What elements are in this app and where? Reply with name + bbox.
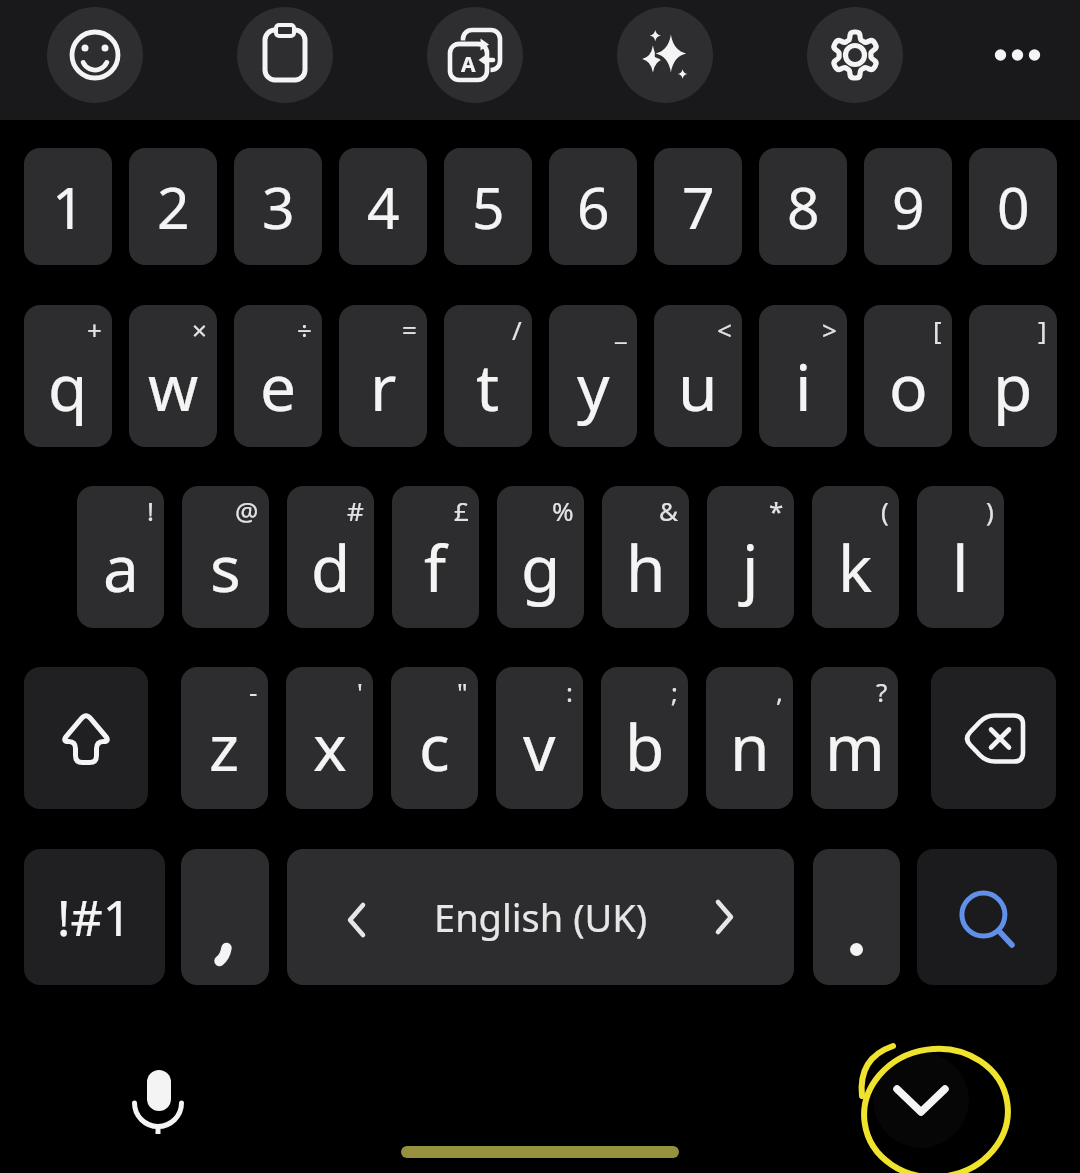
button[interactable]: w bbox=[129, 305, 217, 447]
button[interactable]: k bbox=[812, 486, 899, 628]
staticText: q bbox=[48, 343, 88, 430]
staticText: !#1 bbox=[57, 883, 132, 951]
button[interactable]: 1 bbox=[24, 148, 112, 265]
button[interactable]: !#1 bbox=[24, 849, 165, 985]
staticText: y bbox=[577, 343, 610, 430]
button[interactable] bbox=[617, 7, 713, 103]
staticText: ? bbox=[876, 674, 888, 709]
staticText: English (UK) bbox=[434, 891, 648, 943]
staticText: > bbox=[822, 312, 837, 347]
staticText: e bbox=[260, 343, 297, 430]
staticText: b bbox=[625, 703, 665, 790]
staticText: d bbox=[311, 524, 351, 611]
button[interactable]: e bbox=[234, 305, 322, 447]
staticText: 9 bbox=[892, 168, 925, 246]
staticText: 7 bbox=[682, 168, 715, 246]
button[interactable]: r bbox=[339, 305, 427, 447]
staticText: u bbox=[678, 343, 718, 430]
staticText: a bbox=[103, 524, 139, 611]
button[interactable] bbox=[24, 667, 148, 809]
button[interactable]: 2 bbox=[129, 148, 217, 265]
button[interactable]: z bbox=[181, 667, 268, 809]
button[interactable]: j bbox=[707, 486, 794, 628]
button[interactable] bbox=[813, 849, 900, 985]
staticText: r bbox=[370, 343, 397, 430]
staticText: s bbox=[210, 524, 241, 611]
staticText: v bbox=[523, 703, 556, 790]
staticText: A bbox=[461, 50, 476, 79]
staticText: / bbox=[512, 312, 522, 347]
staticText: 1 bbox=[52, 168, 85, 246]
button[interactable]: d bbox=[287, 486, 374, 628]
button[interactable]: 9 bbox=[864, 148, 952, 265]
button[interactable]: o bbox=[864, 305, 952, 447]
staticText: 5 bbox=[472, 168, 505, 246]
staticText: n bbox=[730, 703, 770, 790]
button[interactable] bbox=[873, 1052, 969, 1148]
button[interactable] bbox=[47, 7, 143, 103]
staticText: i bbox=[795, 343, 812, 430]
staticText: [ bbox=[933, 312, 942, 347]
staticText: g bbox=[521, 524, 561, 611]
staticText: 3 bbox=[262, 168, 295, 246]
button[interactable]: h bbox=[602, 486, 689, 628]
staticText: ! bbox=[147, 493, 154, 528]
staticText: = bbox=[402, 312, 417, 347]
staticText: t bbox=[476, 343, 500, 430]
button[interactable]: b bbox=[601, 667, 688, 809]
staticText: - bbox=[249, 674, 258, 709]
button[interactable]: u bbox=[654, 305, 742, 447]
staticText: f bbox=[424, 524, 447, 611]
button[interactable]: m bbox=[811, 667, 898, 809]
button[interactable]: y bbox=[549, 305, 637, 447]
button[interactable]: 5 bbox=[444, 148, 532, 265]
button[interactable] bbox=[237, 7, 333, 103]
button[interactable]: 4 bbox=[339, 148, 427, 265]
button[interactable]: v bbox=[496, 667, 583, 809]
button[interactable]: q bbox=[24, 305, 112, 447]
button[interactable]: i bbox=[759, 305, 847, 447]
button[interactable] bbox=[110, 1050, 206, 1146]
staticText: k bbox=[838, 524, 873, 611]
button[interactable]: c bbox=[391, 667, 478, 809]
button[interactable]: 7 bbox=[654, 148, 742, 265]
staticText: × bbox=[192, 312, 207, 347]
button[interactable]: 8 bbox=[759, 148, 847, 265]
staticText: % bbox=[552, 493, 574, 528]
button[interactable]: s bbox=[182, 486, 269, 628]
button[interactable]: a bbox=[77, 486, 164, 628]
staticText: p bbox=[993, 343, 1033, 430]
staticText: : bbox=[566, 674, 573, 709]
staticText: 8 bbox=[787, 168, 820, 246]
staticText: , bbox=[776, 674, 783, 709]
button[interactable] bbox=[931, 667, 1056, 809]
button[interactable]: p bbox=[969, 305, 1057, 447]
button[interactable]: English (UK) bbox=[287, 849, 794, 985]
button[interactable]: x bbox=[286, 667, 373, 809]
button[interactable]: 0 bbox=[969, 148, 1057, 265]
button[interactable]: n bbox=[706, 667, 793, 809]
staticText: w bbox=[148, 343, 199, 430]
staticText: @ bbox=[235, 493, 259, 528]
button[interactable]: g bbox=[497, 486, 584, 628]
button[interactable] bbox=[975, 20, 1060, 90]
button[interactable]: f bbox=[392, 486, 479, 628]
staticText: ] bbox=[1038, 312, 1047, 347]
button[interactable]: 3 bbox=[234, 148, 322, 265]
staticText: m bbox=[825, 703, 885, 790]
button[interactable]: 6 bbox=[549, 148, 637, 265]
staticText: 2 bbox=[157, 168, 190, 246]
staticText: h bbox=[626, 524, 666, 611]
staticText: o bbox=[889, 343, 928, 430]
staticText: " bbox=[457, 674, 468, 709]
staticText: + bbox=[87, 312, 102, 347]
button[interactable]: l bbox=[917, 486, 1004, 628]
button[interactable] bbox=[427, 7, 523, 103]
staticText: £ bbox=[454, 493, 469, 528]
button[interactable] bbox=[917, 849, 1057, 985]
button[interactable]: t bbox=[444, 305, 532, 447]
button[interactable] bbox=[181, 849, 269, 985]
staticText: c bbox=[419, 703, 450, 790]
staticText: ( bbox=[881, 493, 889, 528]
button[interactable] bbox=[807, 7, 903, 103]
